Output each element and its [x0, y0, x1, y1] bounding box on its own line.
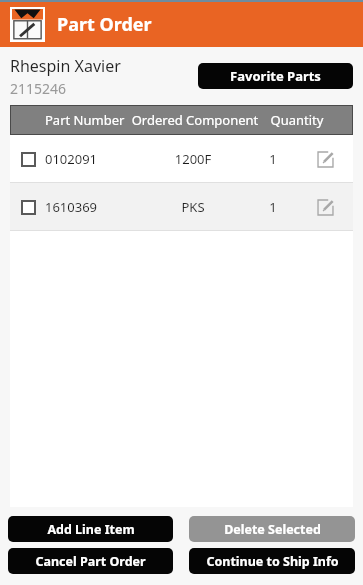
button[interactable]: Select row [10, 135, 353, 183]
staticText: Delete Selected [224, 521, 321, 538]
staticText: 1 [241, 150, 305, 168]
staticText: Favorite Parts [230, 67, 321, 85]
staticText: Part Order [57, 12, 152, 37]
staticText: 1 [241, 198, 305, 216]
button[interactable]: Select row [21, 200, 36, 215]
button[interactable]: Edit line item [305, 183, 345, 231]
staticText: Ordered Component [125, 111, 265, 129]
staticText: 1610369 [45, 198, 98, 216]
button[interactable]: Delete Selected [189, 516, 355, 542]
button[interactable]: Cancel Part Order [8, 548, 173, 574]
staticText: Cancel Part Order [35, 553, 146, 570]
button[interactable]: Select row [21, 152, 36, 167]
staticText: Continue to Ship Info [206, 553, 339, 570]
button[interactable]: Add Line Item [8, 516, 173, 542]
staticText: Part Number [45, 111, 125, 129]
staticText: Add Line Item [47, 521, 135, 538]
button[interactable]: Select row [10, 183, 353, 231]
staticText: PKS [145, 198, 241, 216]
button[interactable]: Favorite Parts [198, 63, 353, 89]
button[interactable]: Edit line item [305, 135, 345, 183]
button[interactable]: App logo [10, 7, 45, 42]
staticText: Quantity [265, 111, 329, 129]
staticText: 1200F [145, 150, 241, 168]
staticText: 0102091 [45, 150, 98, 168]
staticText: 2115246 [10, 79, 67, 98]
staticText: Rhespin Xavier [10, 55, 121, 77]
button[interactable]: Continue to Ship Info [189, 548, 355, 574]
